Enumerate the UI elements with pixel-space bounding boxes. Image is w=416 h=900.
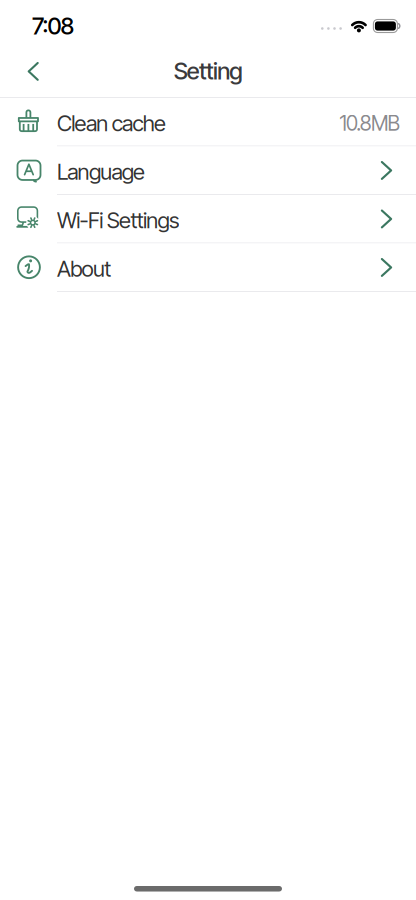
button[interactable]: Back xyxy=(0,47,51,94)
staticText: Wi-Fi Settings xyxy=(57,207,179,233)
button[interactable]: Wi-Fi Settings xyxy=(0,195,416,242)
staticText: 10.8MB xyxy=(339,111,399,136)
staticText: Clean cache xyxy=(57,110,166,136)
button[interactable]: Language xyxy=(0,146,416,194)
staticText: Language xyxy=(57,158,145,185)
staticText: Setting xyxy=(174,57,242,85)
button[interactable]: About xyxy=(0,243,416,291)
staticText: 7:08 xyxy=(32,12,75,40)
staticText: About xyxy=(57,255,111,282)
button[interactable]: Clean cache xyxy=(0,98,416,145)
